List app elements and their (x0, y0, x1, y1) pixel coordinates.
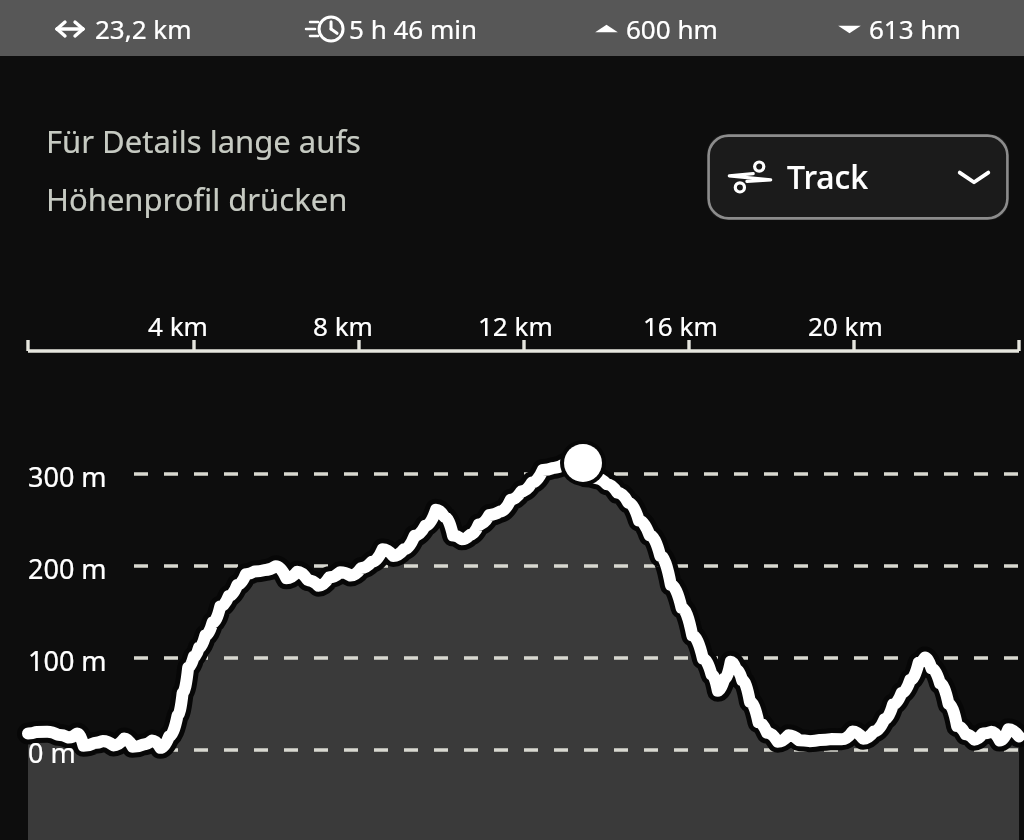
staticText: 4 km (148, 308, 208, 343)
staticText: 20 km (808, 308, 883, 343)
staticText: 0 m (28, 734, 76, 771)
staticText: 5 h 46 min (349, 11, 478, 46)
staticText: Höhenprofil drücken (46, 178, 348, 220)
staticText: 100 m (28, 642, 107, 679)
staticText: 8 km (313, 308, 373, 343)
staticText: 23,2 km (95, 11, 192, 46)
other: Track type (727, 157, 773, 197)
staticText: Track (787, 155, 869, 199)
button[interactable]: Track type (707, 134, 1009, 220)
staticText: 613 hm (869, 11, 961, 46)
staticText: 16 km (643, 308, 718, 343)
staticText: 600 hm (626, 11, 718, 46)
staticText: 300 m (28, 458, 107, 495)
button[interactable] (0, 0, 1024, 840)
other: Expand (957, 166, 991, 188)
staticText: 200 m (28, 550, 107, 587)
staticText: Für Details lange aufs (46, 120, 361, 162)
staticText: 12 km (478, 308, 553, 343)
